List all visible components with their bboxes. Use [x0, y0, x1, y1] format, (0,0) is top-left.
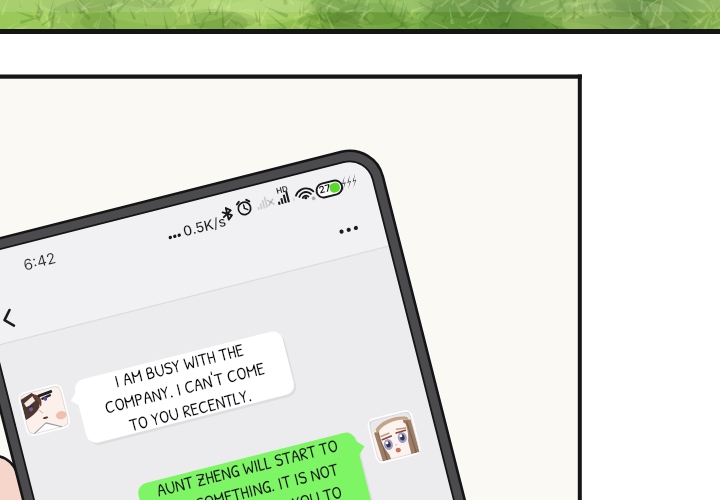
- button[interactable]: [0, 0, 720, 500]
